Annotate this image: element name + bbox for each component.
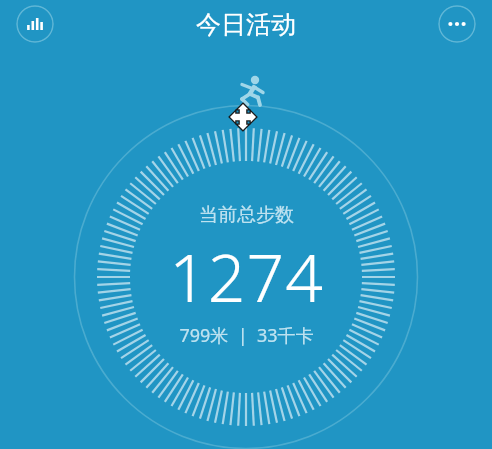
- staticText: 799米 | 33千卡: [179, 323, 314, 348]
- button[interactable]: Statistics: [16, 5, 54, 43]
- staticText: 今日活动: [196, 9, 296, 40]
- staticText: 当前总步数: [199, 203, 294, 227]
- staticText: 1274: [169, 231, 324, 321]
- button[interactable]: More options: [438, 5, 476, 43]
